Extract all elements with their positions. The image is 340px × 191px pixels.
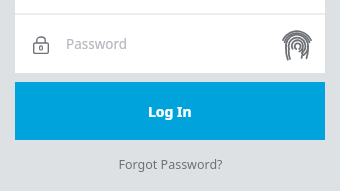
- button[interactable]: Password lock: [15, 15, 325, 73]
- staticText: Log In: [148, 102, 192, 121]
- button[interactable]: Log In: [15, 82, 325, 140]
- other: Password lock: [33, 35, 49, 54]
- button[interactable]: Fingerprint login: [278, 25, 316, 63]
- button[interactable]: Forgot Password?: [110, 152, 231, 177]
- staticText: Forgot Password?: [118, 156, 223, 173]
- staticText: Password: [66, 35, 128, 53]
